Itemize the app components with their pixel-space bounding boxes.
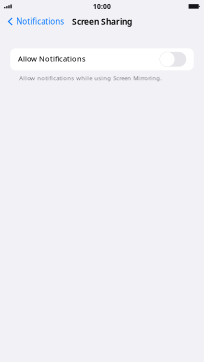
staticText: Allow Notifications	[18, 53, 86, 64]
staticText: Screen Sharing	[72, 16, 132, 27]
button[interactable]: Notifications	[7, 15, 64, 28]
button[interactable]: Allow Notifications	[10, 48, 194, 70]
staticText: Allow notifications while using Screen M…	[19, 74, 162, 82]
staticText: Notifications	[16, 16, 64, 27]
staticText: 10:00	[93, 2, 111, 11]
button[interactable]: Allow Notifications, off	[160, 52, 186, 67]
